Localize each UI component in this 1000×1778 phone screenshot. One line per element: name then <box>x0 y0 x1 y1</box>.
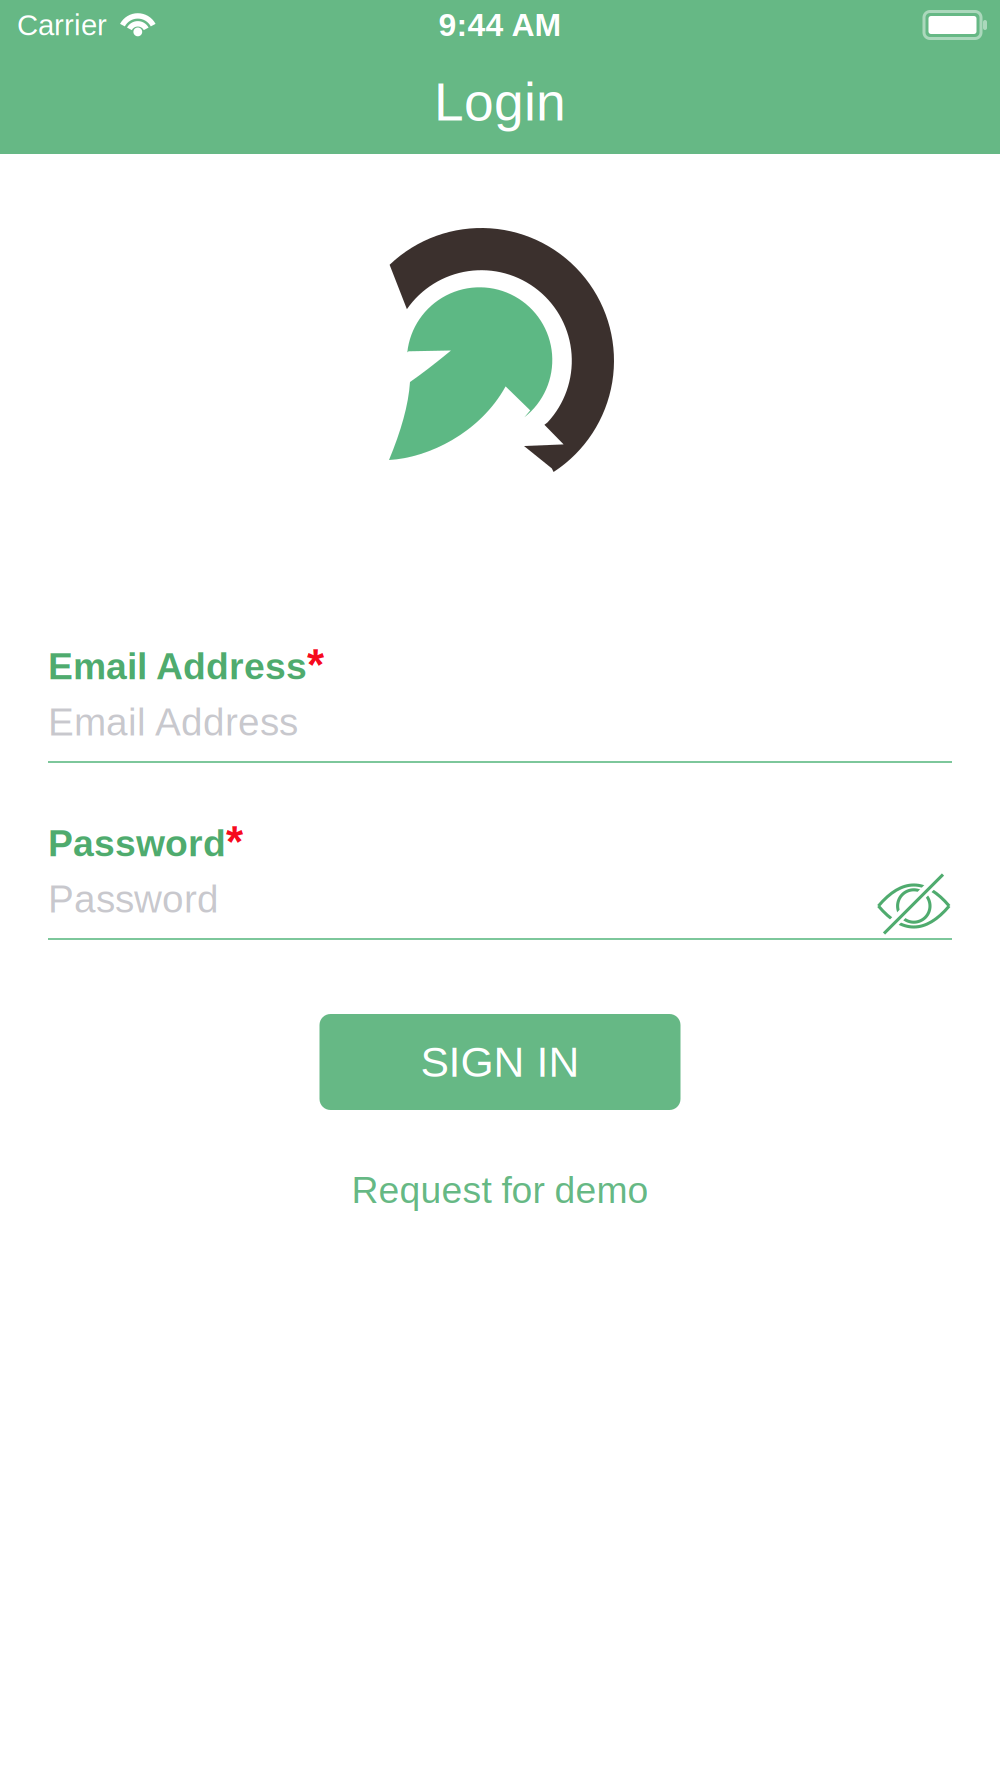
staticText: SIGN IN <box>420 1038 579 1086</box>
staticText: Email Address <box>48 700 298 744</box>
staticText: * <box>307 640 324 690</box>
staticText: * <box>226 817 243 867</box>
staticText: Request for demo <box>351 1169 648 1211</box>
button[interactable]: SIGN IN <box>319 1014 680 1110</box>
staticText: 9:44 AM <box>438 7 561 43</box>
button[interactable]: Request for demo <box>351 1110 648 1215</box>
staticText: Password <box>48 822 226 864</box>
staticText: Carrier <box>17 9 107 41</box>
staticText: Email Address <box>48 645 307 687</box>
staticText: Password <box>48 877 219 921</box>
staticText: Login <box>434 72 566 132</box>
